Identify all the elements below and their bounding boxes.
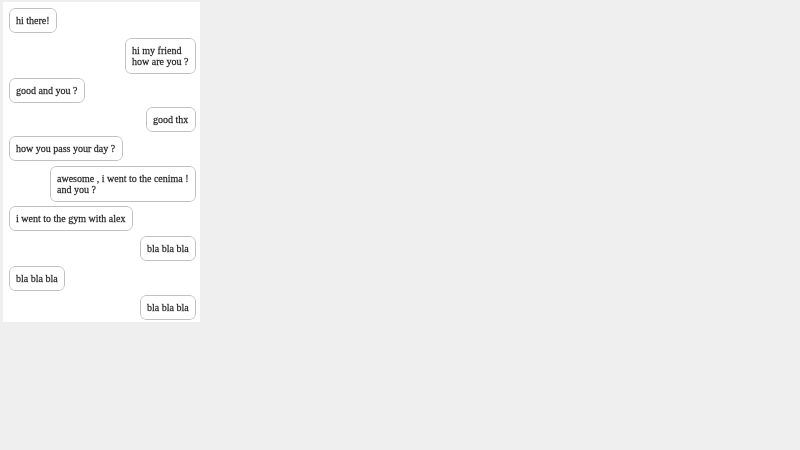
- staticText: bla bla bla: [147, 302, 189, 313]
- staticText: how are you ?: [132, 56, 189, 67]
- button[interactable]: bla bla bla: [140, 236, 196, 261]
- button[interactable]: awesome , i went to the cenima !: [50, 166, 196, 202]
- staticText: awesome , i went to the cenima !: [57, 173, 189, 184]
- staticText: bla bla bla: [16, 273, 58, 284]
- staticText: awesome , i went to the cenima !: [57, 173, 189, 184]
- staticText: bla bla bla: [147, 243, 189, 254]
- staticText: hi my friend: [132, 45, 182, 56]
- staticText: hi my friend: [132, 45, 182, 56]
- staticText: i went to the gym with alex: [16, 213, 126, 224]
- staticText: good thx: [153, 114, 189, 125]
- button[interactable]: i went to the gym with alex: [9, 206, 133, 231]
- staticText: how you pass your day ?: [16, 143, 116, 154]
- staticText: bla bla bla: [147, 243, 189, 254]
- button[interactable]: bla bla bla: [9, 266, 65, 291]
- staticText: and you ?: [57, 184, 96, 195]
- staticText: bla bla bla: [16, 273, 58, 284]
- staticText: how are you ?: [132, 56, 189, 67]
- staticText: bla bla bla: [147, 302, 189, 313]
- staticText: good thx: [153, 114, 189, 125]
- button[interactable]: good thx: [146, 107, 196, 132]
- button[interactable]: how you pass your day ?: [9, 136, 123, 161]
- staticText: hi there!: [16, 15, 50, 26]
- button[interactable]: good and you ?: [9, 78, 85, 103]
- staticText: good and you ?: [16, 85, 78, 96]
- button[interactable]: hi there!: [9, 8, 57, 33]
- button[interactable]: bla bla bla: [140, 295, 196, 320]
- staticText: i went to the gym with alex: [16, 213, 126, 224]
- button[interactable]: hi my friend: [125, 38, 196, 74]
- staticText: how you pass your day ?: [16, 143, 116, 154]
- staticText: and you ?: [57, 184, 96, 195]
- staticText: good and you ?: [16, 85, 78, 96]
- staticText: hi there!: [16, 15, 50, 26]
